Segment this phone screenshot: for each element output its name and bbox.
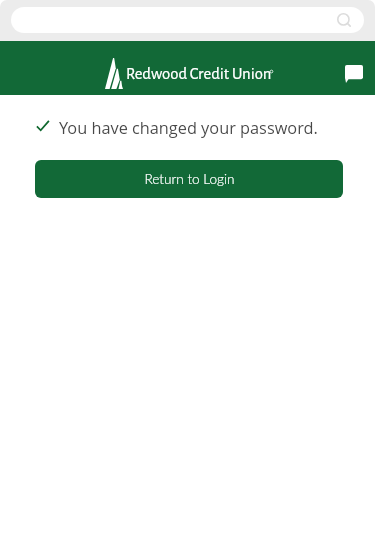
staticText: Return to Login bbox=[144, 171, 235, 187]
staticText: You have changed your password. bbox=[59, 117, 318, 139]
button[interactable]: Return to Login bbox=[35, 160, 343, 198]
staticText: Redwood Credit Union bbox=[126, 66, 272, 83]
other: Search bbox=[337, 13, 351, 27]
button[interactable]: Search bbox=[11, 7, 364, 33]
button[interactable]: Chat with us bbox=[345, 65, 363, 83]
